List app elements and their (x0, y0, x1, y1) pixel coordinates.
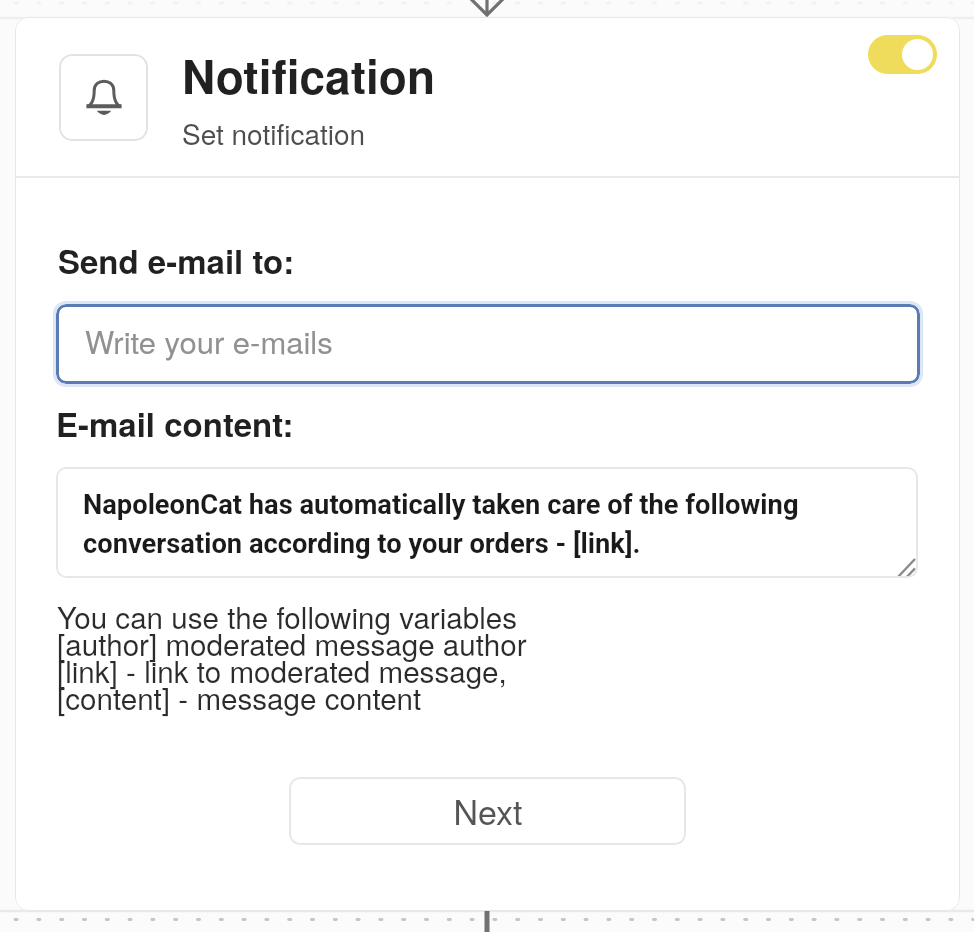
button[interactable]: Write your e-mails (56, 304, 920, 384)
staticText: Write your e-mails (85, 327, 333, 361)
staticText: Notification (182, 55, 436, 105)
staticText: You can use the following variables [aut… (57, 595, 527, 718)
button[interactable]: Notification (15, 17, 960, 177)
button[interactable]: Toggle notification (868, 35, 937, 74)
button[interactable]: Next (289, 777, 686, 845)
staticText: Send e-mail to: (58, 246, 295, 282)
staticText: Set notification (182, 119, 366, 151)
staticText: NapoleonCat has automatically taken care… (83, 484, 896, 562)
button[interactable]: NapoleonCat has automatically taken care… (56, 467, 918, 578)
staticText: E-mail content: (56, 409, 294, 445)
staticText: Next (453, 795, 523, 832)
